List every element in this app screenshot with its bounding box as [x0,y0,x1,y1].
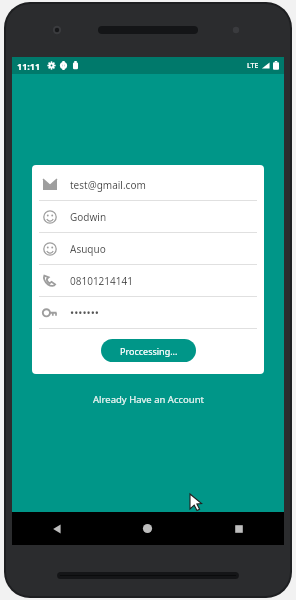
staticText: Godwin [70,210,107,224]
staticText: test@gmail.com [70,178,146,192]
button[interactable]: Proccessing... [101,339,196,362]
button[interactable]: Asuquo [32,233,264,264]
staticText: Already Have an Account [93,393,204,406]
staticText: ••••••• [70,305,99,320]
button[interactable]: test@gmail.com [32,169,264,200]
button[interactable]: Back [12,512,102,545]
button[interactable]: Already Have an Account [85,390,212,409]
button[interactable]: ••••••• [32,297,264,328]
staticText: Proccessing... [120,345,178,357]
staticText: LTE [247,61,259,71]
staticText: 08101214141 [70,274,133,288]
button[interactable]: 08101214141 [32,265,264,296]
button[interactable]: Recent apps [193,512,284,545]
button[interactable]: Godwin [32,201,264,232]
staticText: 11:11 [17,60,41,72]
button[interactable]: Home [102,512,193,545]
staticText: Asuquo [70,242,106,256]
